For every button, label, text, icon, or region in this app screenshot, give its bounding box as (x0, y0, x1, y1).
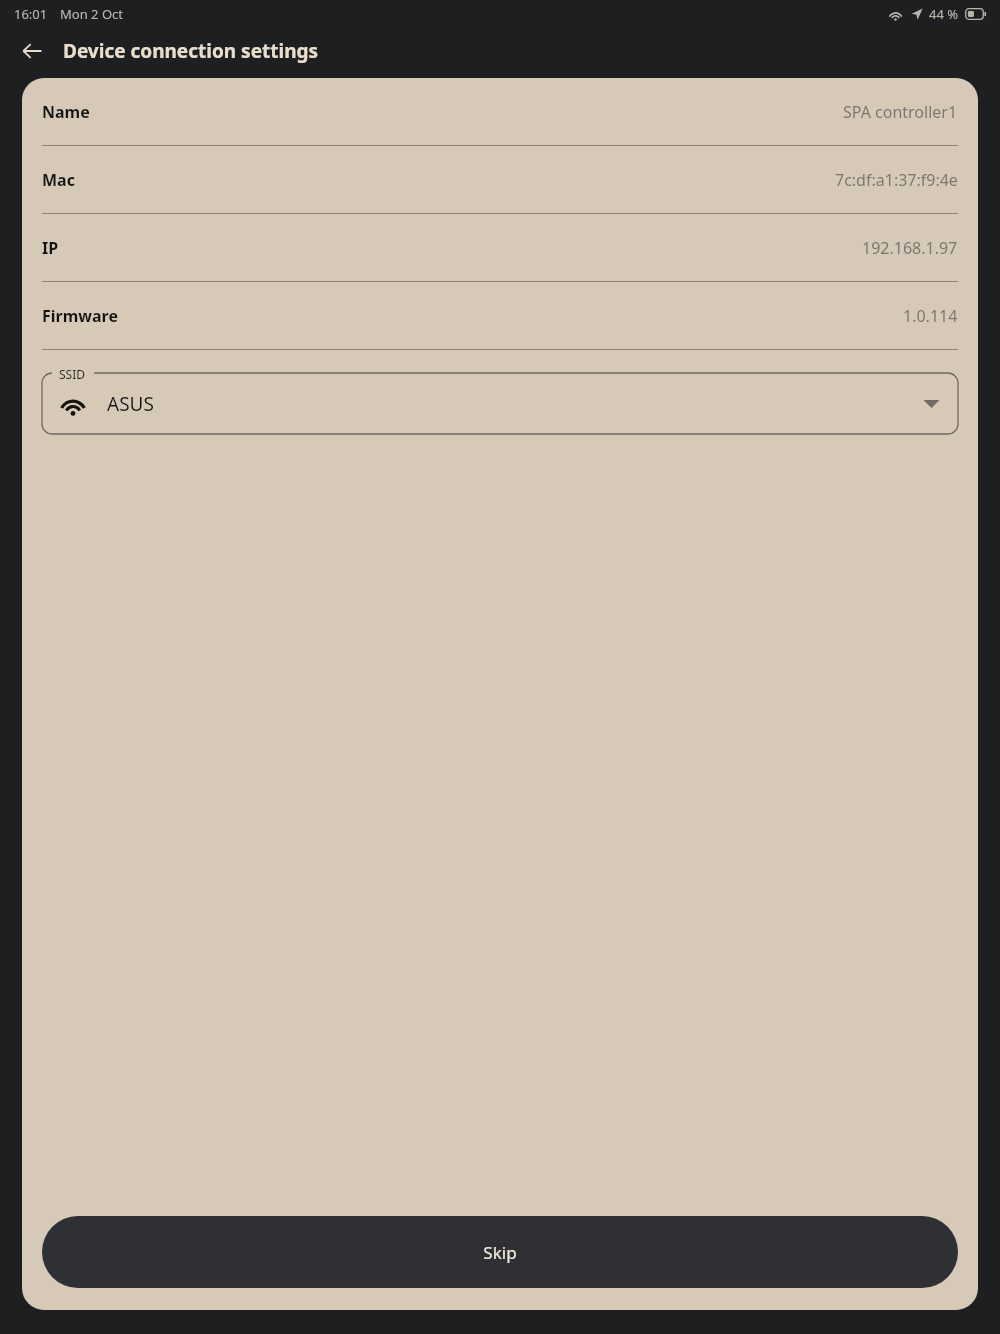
staticText: 16:01 (14, 5, 48, 23)
staticText: Device connection settings (63, 38, 319, 64)
button[interactable]: IP (42, 214, 958, 281)
staticText: SPA controller1 (843, 101, 958, 123)
staticText: Skip (483, 1241, 517, 1264)
staticText: Mon 2 Oct (60, 5, 123, 23)
button[interactable]: Name (42, 78, 958, 145)
staticText: SSID (59, 366, 86, 382)
staticText: ASUS (107, 391, 154, 417)
staticText: 7c:df:a1:37:f9:4e (835, 169, 958, 191)
button[interactable]: Firmware (42, 282, 958, 349)
staticText: Firmware (42, 305, 118, 327)
staticText: 1.0.114 (903, 305, 958, 327)
staticText: IP (42, 237, 59, 259)
staticText: 192.168.1.97 (862, 237, 958, 259)
staticText: Name (42, 101, 90, 123)
staticText: 44 % (929, 5, 959, 23)
button[interactable]: SSID (42, 364, 958, 434)
staticText: Mac (42, 169, 75, 191)
button[interactable]: Back (11, 30, 53, 72)
button[interactable]: Mac (42, 146, 958, 213)
button[interactable]: Skip (42, 1216, 958, 1288)
